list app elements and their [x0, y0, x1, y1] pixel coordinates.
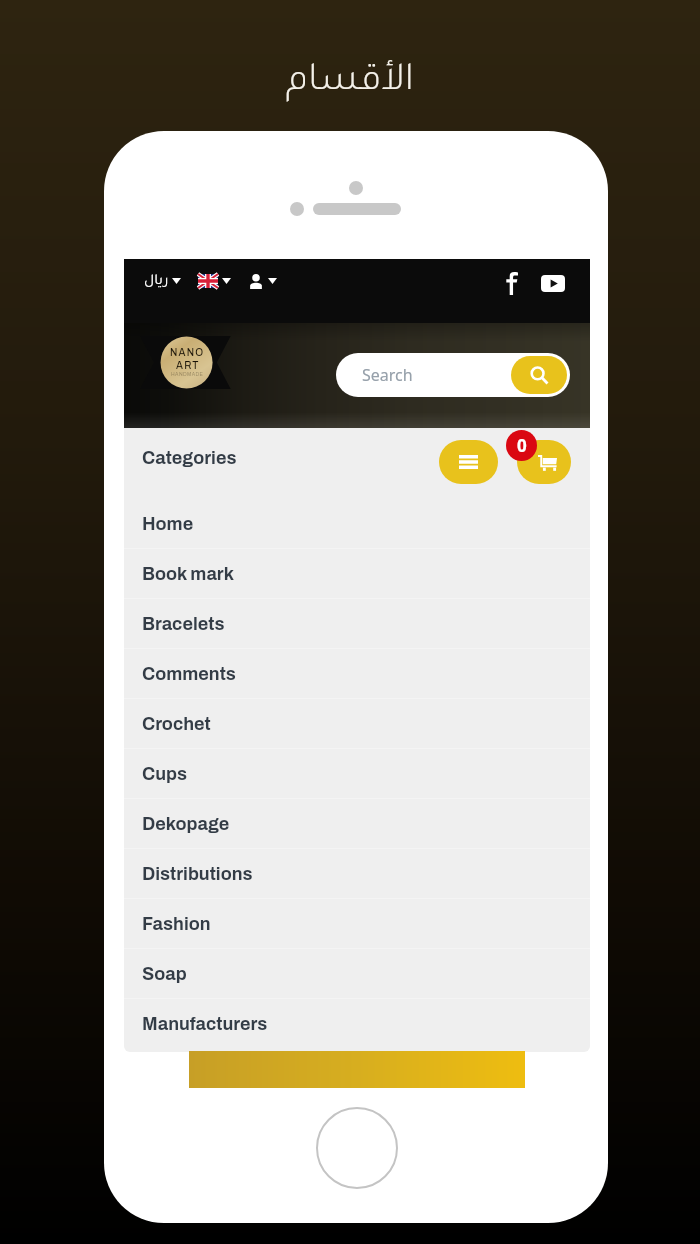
staticText: ART: [176, 360, 200, 371]
button[interactable]: Bracelets: [124, 599, 590, 649]
button[interactable]: Search: [511, 356, 567, 394]
staticText: Dekopage: [142, 814, 230, 834]
staticText: Manufacturers: [142, 1014, 268, 1034]
staticText: Bracelets: [142, 614, 225, 634]
staticText: Soap: [142, 964, 187, 984]
button[interactable]: Fashion: [124, 899, 590, 949]
staticText: ريال: [144, 274, 169, 289]
staticText: Search: [362, 364, 413, 386]
button[interactable]: Language: [194, 272, 235, 290]
button[interactable]: Home: [124, 499, 590, 549]
button[interactable]: Cups: [124, 749, 590, 799]
staticText: Comments: [142, 664, 236, 684]
button[interactable]: Manufacturers: [124, 999, 590, 1049]
button[interactable]: ريال: [140, 270, 185, 292]
button[interactable]: Comments: [124, 649, 590, 699]
button[interactable]: Cart: [517, 440, 571, 484]
button[interactable]: YouTube: [537, 271, 569, 296]
button[interactable]: Distributions: [124, 849, 590, 899]
staticText: Home: [142, 514, 194, 534]
staticText: Distributions: [142, 864, 253, 884]
button[interactable]: Nano Art logo: [140, 336, 236, 389]
staticText: Book mark: [142, 564, 234, 584]
staticText: 0: [517, 434, 527, 457]
button[interactable]: Account: [245, 272, 281, 290]
button[interactable]: Dekopage: [124, 799, 590, 849]
button[interactable]: Menu: [439, 440, 498, 484]
staticText: الأقسام: [0, 63, 700, 103]
button[interactable]: Facebook: [501, 270, 522, 297]
button[interactable]: Crochet: [124, 699, 590, 749]
button[interactable]: Search: [336, 353, 570, 397]
staticText: NANO: [170, 347, 205, 358]
staticText: Categories: [142, 448, 237, 468]
staticText: HANDMADE: [171, 372, 204, 377]
staticText: Cups: [142, 764, 187, 784]
staticText: Crochet: [142, 714, 211, 734]
button[interactable]: Book mark: [124, 549, 590, 599]
staticText: Fashion: [142, 914, 211, 934]
button[interactable]: Soap: [124, 949, 590, 999]
